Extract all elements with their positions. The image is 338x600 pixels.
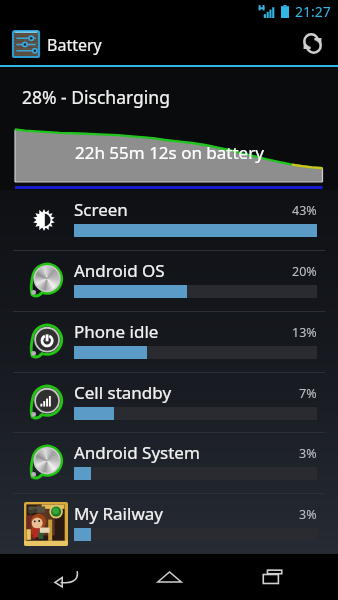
staticText: Cell standby: [74, 381, 172, 404]
staticText: 43%: [292, 202, 317, 219]
button[interactable]: Phone idle: [0, 312, 338, 372]
button[interactable]: Battery: [0, 22, 338, 65]
staticText: 13%: [292, 324, 317, 341]
button[interactable]: Refresh: [290, 22, 334, 65]
button[interactable]: Back: [29, 555, 103, 599]
button[interactable]: My Railway: [0, 494, 338, 554]
staticText: Android System: [74, 441, 200, 464]
staticText: 20%: [292, 263, 317, 280]
button[interactable]: Screen: [0, 190, 338, 250]
button[interactable]: Android System: [0, 433, 338, 493]
button[interactable]: Home: [132, 555, 206, 599]
staticText: Screen: [74, 198, 128, 221]
button[interactable]: Recents: [235, 555, 309, 599]
button[interactable]: Cell standby: [0, 373, 338, 432]
staticText: 3%: [299, 506, 317, 523]
button[interactable]: Android OS: [0, 251, 338, 311]
staticText: Android OS: [74, 259, 165, 282]
staticText: My Railway: [74, 502, 163, 525]
staticText: 7%: [299, 385, 317, 402]
staticText: Phone idle: [74, 320, 159, 343]
staticText: 21:27: [295, 2, 331, 21]
staticText: 22h 55m 12s on battery: [75, 141, 264, 164]
staticText: Battery: [47, 34, 102, 56]
staticText: 28% - Discharging: [22, 85, 170, 109]
staticText: 3%: [299, 445, 317, 462]
